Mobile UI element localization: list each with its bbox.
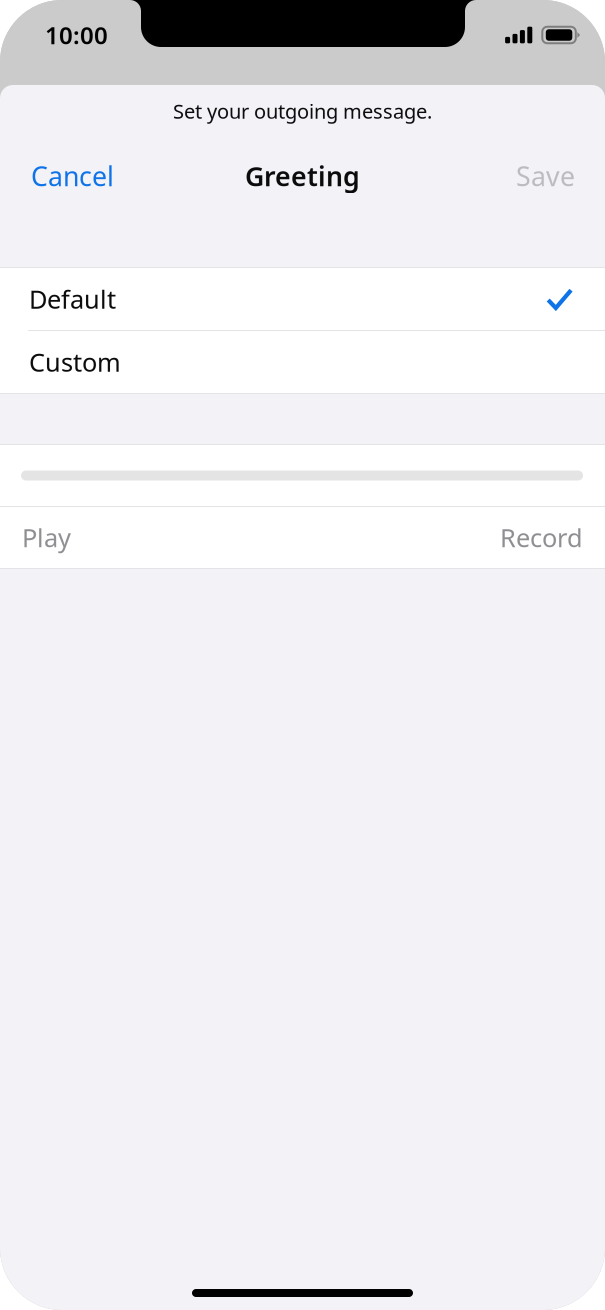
staticText: Play bbox=[22, 521, 71, 554]
staticText: Greeting bbox=[245, 158, 360, 194]
button[interactable]: Save bbox=[502, 149, 575, 203]
staticText: Set your outgoing message. bbox=[173, 98, 432, 124]
staticText: 10:00 bbox=[45, 19, 108, 51]
button[interactable]: Play bbox=[22, 509, 87, 566]
button[interactable]: Record bbox=[484, 509, 583, 566]
button[interactable]: Default bbox=[0, 268, 605, 330]
button[interactable]: Custom bbox=[0, 331, 605, 393]
button[interactable]: Cancel bbox=[31, 149, 128, 203]
staticText: Cancel bbox=[31, 158, 114, 194]
staticText: Record bbox=[500, 521, 583, 554]
staticText: Default bbox=[29, 282, 116, 316]
staticText: Custom bbox=[29, 345, 121, 379]
staticText: Save bbox=[516, 158, 575, 194]
